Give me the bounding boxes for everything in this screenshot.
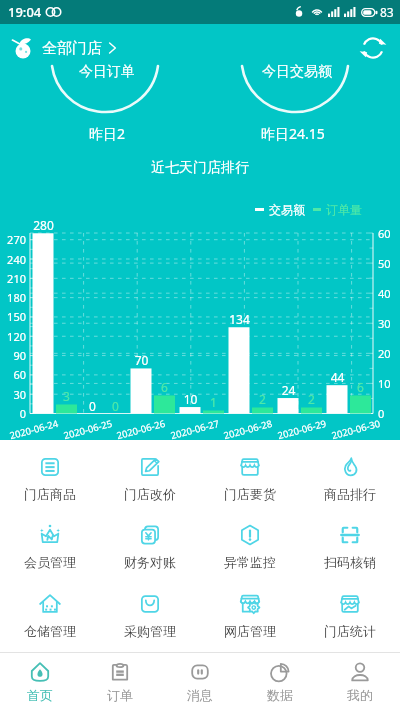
staticText: 昨日24.15 — [261, 124, 325, 143]
button[interactable]: Refresh — [360, 35, 386, 61]
staticText: 我的 — [347, 687, 373, 703]
button[interactable]: 商品排行 — [300, 456, 400, 510]
staticText: 消息 — [187, 687, 213, 703]
staticText: 40 — [378, 286, 391, 301]
button[interactable]: 订单 — [80, 652, 160, 711]
staticText: 订单 — [107, 687, 133, 703]
button[interactable]: 异常监控 — [200, 524, 300, 578]
staticText: 2 — [301, 391, 322, 407]
staticText: 150 — [0, 309, 26, 324]
button[interactable]: 全部门店 — [12, 37, 117, 59]
staticText: 1 — [203, 394, 224, 410]
staticText: 昨日2 — [89, 124, 126, 143]
button[interactable]: 门店要货 — [200, 456, 300, 510]
staticText: 60 — [378, 226, 391, 241]
staticText: 2020-06-30 — [330, 417, 382, 442]
button[interactable]: 门店改价 — [100, 456, 200, 510]
staticText: 3 — [56, 388, 77, 404]
staticText: 134 — [229, 311, 250, 327]
staticText: 0 — [0, 406, 26, 421]
staticText: 2020-06-26 — [115, 417, 167, 442]
staticText: 网店管理 — [224, 623, 276, 639]
staticText: 采购管理 — [124, 623, 176, 639]
staticText: 门店改价 — [124, 486, 176, 502]
staticText: 0 — [105, 398, 126, 414]
staticText: 83 — [380, 4, 394, 20]
staticText: 44 — [327, 369, 348, 385]
button[interactable]: 仓储管理 — [0, 593, 100, 647]
staticText: 10 — [378, 376, 391, 391]
staticText: 2020-06-29 — [276, 417, 328, 442]
staticText: 今日交易额 — [262, 63, 332, 81]
staticText: 120 — [0, 329, 26, 344]
staticText: 90 — [0, 348, 26, 363]
staticText: 0 — [82, 398, 103, 414]
staticText: 异常监控 — [224, 554, 276, 570]
button[interactable]: 我的 — [320, 652, 400, 711]
staticText: 门店商品 — [24, 486, 76, 502]
staticText: 30 — [0, 387, 26, 402]
staticText: 2020-06-24 — [8, 417, 60, 442]
staticText: 数据 — [267, 687, 293, 703]
button[interactable]: 门店统计 — [300, 593, 400, 647]
button[interactable]: 扫码核销 — [300, 524, 400, 578]
staticText: 订单量 — [326, 202, 362, 217]
staticText: 会员管理 — [24, 554, 76, 570]
staticText: 0 — [378, 406, 385, 421]
staticText: 280 — [33, 217, 54, 233]
staticText: 扫码核销 — [324, 554, 376, 570]
staticText: 2020-06-27 — [169, 417, 221, 442]
staticText: 近七天门店排行 — [0, 159, 400, 177]
staticText: 2 — [252, 391, 273, 407]
staticText: 30 — [378, 316, 391, 331]
staticText: 门店要货 — [224, 486, 276, 502]
button[interactable]: 消息 — [160, 652, 240, 711]
button[interactable]: 财务对账 — [100, 524, 200, 578]
staticText: 19:04 — [8, 3, 42, 21]
button[interactable]: 会员管理 — [0, 524, 100, 578]
staticText: 交易额 — [269, 202, 305, 217]
staticText: 10 — [180, 391, 201, 407]
button[interactable]: 数据 — [240, 652, 320, 711]
staticText: 60 — [0, 367, 26, 382]
staticText: 2020-06-28 — [222, 417, 274, 442]
staticText: 商品排行 — [324, 486, 376, 502]
staticText: 6 — [350, 379, 371, 395]
staticText: 270 — [0, 232, 26, 247]
staticText: 首页 — [27, 687, 53, 703]
staticText: 门店统计 — [324, 623, 376, 639]
staticText: 今日订单 — [79, 63, 135, 81]
staticText: 2020-06-25 — [62, 417, 114, 442]
staticText: 20 — [378, 346, 391, 361]
staticText: 全部门店 — [42, 39, 102, 58]
button[interactable]: 首页 — [0, 652, 80, 711]
staticText: 24 — [278, 382, 299, 398]
staticText: 仓储管理 — [24, 623, 76, 639]
staticText: 50 — [378, 256, 391, 271]
button[interactable]: 门店商品 — [0, 456, 100, 510]
button[interactable]: 采购管理 — [100, 593, 200, 647]
button[interactable]: 网店管理 — [200, 593, 300, 647]
staticText: 240 — [0, 252, 26, 267]
staticText: 70 — [131, 352, 152, 368]
staticText: 180 — [0, 290, 26, 305]
staticText: 财务对账 — [124, 554, 176, 570]
staticText: 210 — [0, 271, 26, 286]
staticText: 6 — [154, 379, 175, 395]
